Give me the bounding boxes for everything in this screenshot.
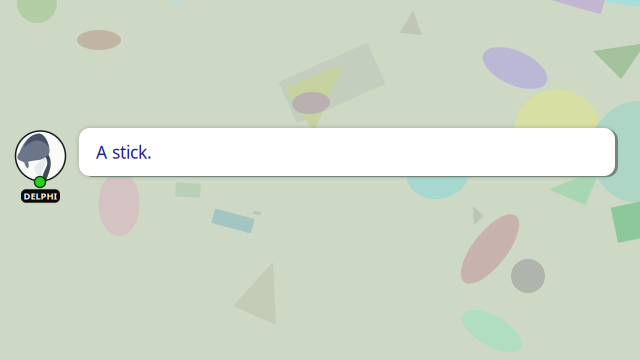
staticText: A stick. <box>96 140 152 163</box>
button[interactable]: A stick. <box>75 124 619 180</box>
staticText: DELPHI <box>23 190 57 202</box>
button[interactable]: Delphi <box>0 0 640 360</box>
